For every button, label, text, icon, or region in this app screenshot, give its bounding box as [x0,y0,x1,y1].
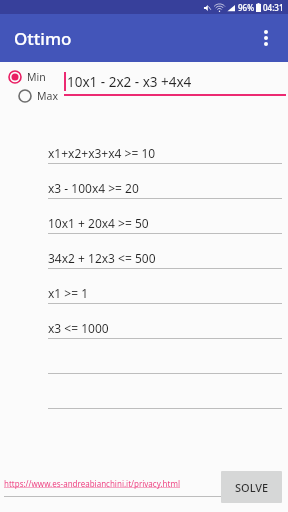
button[interactable]: x1 >= 1 [0,282,288,317]
staticText: 10x1 + 20x4 >= 50 [48,215,149,231]
staticText: Max [37,89,58,103]
staticText: 96% [238,2,254,13]
staticText: 34x2 + 12x3 <= 500 [48,250,156,266]
staticText: x1+x2+x3+x4 >= 10 [48,145,156,161]
button[interactable]: x3 - 100x4 >= 20 [0,177,288,212]
button[interactable]: x3 <= 1000 [0,317,288,352]
button[interactable]: More options [244,16,288,60]
staticText: x1 >= 1 [48,285,89,301]
staticText: 04:31 [263,2,284,13]
button[interactable]: 10x1 + 20x4 >= 50 [0,212,288,247]
button[interactable]: x1+x2+x3+x4 >= 10 [0,142,288,177]
button[interactable]: https://www.es-andreabianchini.it/privac… [4,478,180,489]
staticText: SOLVE [235,480,269,495]
button[interactable]: Max [16,88,60,104]
button[interactable]: SOLVE [221,471,282,503]
staticText: x3 - 100x4 >= 20 [48,180,139,196]
button[interactable] [0,387,288,422]
staticText: Min [27,70,46,84]
staticText: Ottimo [14,27,72,50]
staticText: x3 <= 1000 [48,320,109,336]
button[interactable]: Min [6,69,48,85]
staticText: 10x1 - 2x2 - x3 +4x4 [67,73,192,91]
staticText: https://www.es-andreabianchini.it/privac… [4,478,180,489]
button[interactable] [0,352,288,387]
button[interactable]: 34x2 + 12x3 <= 500 [0,247,288,282]
